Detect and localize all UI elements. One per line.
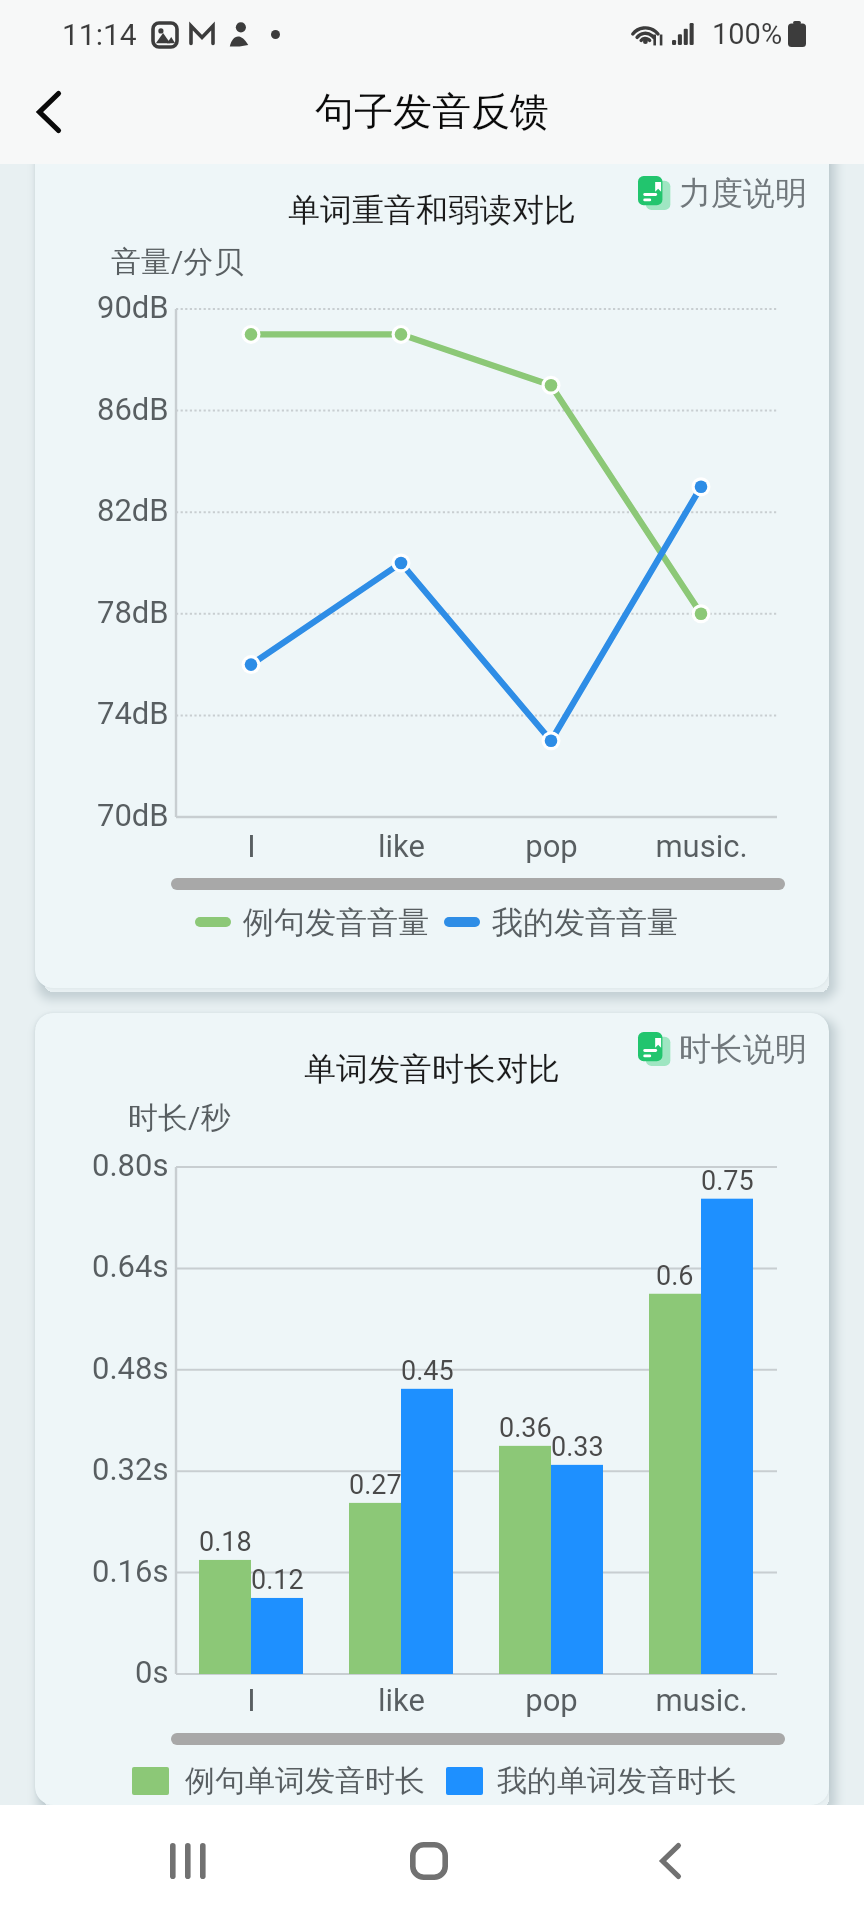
staticText: 0.18 <box>199 1526 252 1558</box>
staticText: 0.16s <box>92 1553 169 1589</box>
staticText: 力度说明 <box>679 173 807 213</box>
staticText: I <box>247 1682 256 1718</box>
staticText: 时长说明 <box>679 1029 807 1069</box>
staticText: 78dB <box>97 594 169 630</box>
staticText: 0.32s <box>92 1451 169 1487</box>
staticText: music. <box>655 828 748 864</box>
staticText: 0s <box>135 1654 169 1690</box>
staticText: 90dB <box>97 289 169 325</box>
staticText: 0.6 <box>656 1260 694 1292</box>
staticText: 我的单词发音时长 <box>497 1762 737 1800</box>
staticText: like <box>378 828 425 864</box>
staticText: I <box>247 828 256 864</box>
button[interactable]: 力度说明 <box>638 166 807 220</box>
staticText: like <box>378 1682 425 1718</box>
staticText: 0.36 <box>499 1412 552 1444</box>
staticText: 单词发音时长对比 <box>304 1049 560 1089</box>
staticText: 74dB <box>97 695 169 731</box>
button[interactable]: 例句发音音量 <box>195 897 678 947</box>
staticText: 100% <box>712 17 783 51</box>
button[interactable]: Recent apps <box>131 1805 243 1917</box>
staticText: 我的发音音量 <box>492 903 678 942</box>
button[interactable]: 时长说明 <box>638 1022 807 1076</box>
staticText: 0.80s <box>92 1147 169 1183</box>
staticText: 例句单词发音时长 <box>185 1762 425 1800</box>
button[interactable]: Home <box>373 1805 485 1917</box>
staticText: pop <box>525 1682 578 1718</box>
staticText: 0.75 <box>701 1165 754 1197</box>
button[interactable]: 例句单词发音时长 <box>132 1756 737 1805</box>
staticText: 0.27 <box>349 1469 402 1501</box>
button[interactable]: Back <box>614 1805 726 1917</box>
staticText: 11:14 <box>62 17 137 52</box>
staticText: 句子发音反馈 <box>315 87 549 136</box>
staticText: 0.48s <box>92 1350 169 1386</box>
staticText: 0.45 <box>401 1355 454 1387</box>
staticText: 时长/秒 <box>128 1099 231 1137</box>
staticText: 0.33 <box>551 1431 604 1463</box>
staticText: 0.64s <box>92 1248 169 1284</box>
button[interactable]: Back <box>13 76 85 148</box>
staticText: 70dB <box>97 797 169 833</box>
staticText: 例句发音音量 <box>243 903 429 942</box>
staticText: 音量/分贝 <box>111 243 244 281</box>
staticText: pop <box>525 828 578 864</box>
staticText: 0.12 <box>251 1564 304 1596</box>
staticText: 86dB <box>97 391 169 427</box>
staticText: 82dB <box>97 492 169 528</box>
staticText: music. <box>655 1682 748 1718</box>
staticText: 单词重音和弱读对比 <box>288 190 576 230</box>
